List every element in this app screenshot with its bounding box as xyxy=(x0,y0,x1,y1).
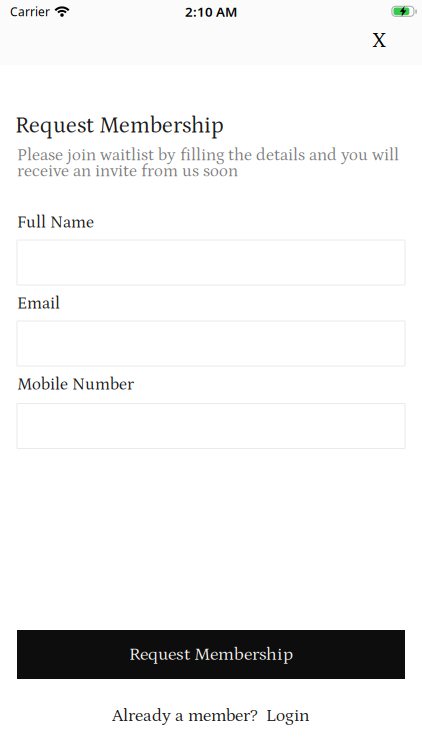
staticText: Carrier xyxy=(10,4,50,19)
staticText: Already a member? Login xyxy=(112,706,310,726)
staticText: Please join waitlist by filling the deta… xyxy=(17,146,399,181)
staticText: 2:10 AM xyxy=(185,3,237,20)
staticText: X xyxy=(372,28,386,53)
staticText: Full Name xyxy=(17,213,94,232)
staticText: Request Membership xyxy=(15,113,224,138)
staticText: Mobile Number xyxy=(17,375,134,394)
button[interactable]: Request Membership xyxy=(17,630,405,679)
staticText: Email xyxy=(17,294,60,313)
staticText: Request Membership xyxy=(129,644,293,665)
button[interactable]: Already a member? Login xyxy=(17,706,405,726)
button[interactable]: Close xyxy=(360,29,398,52)
